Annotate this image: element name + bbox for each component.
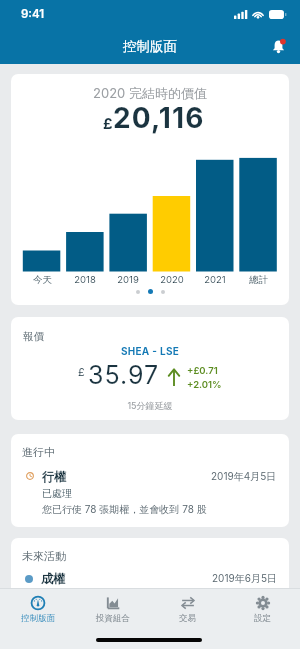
- staticText: 交易: [179, 613, 196, 624]
- button[interactable]: 2020 完結時的價值: [11, 74, 289, 305]
- button[interactable]: 控制版面: [0, 589, 75, 625]
- button[interactable]: Notifications: [265, 33, 291, 59]
- staticText: 您已行使 78 張期權，並會收到 78 股: [42, 503, 207, 516]
- button[interactable]: 報價: [11, 317, 289, 420]
- staticText: 設定: [254, 613, 271, 624]
- button[interactable]: 設定: [225, 589, 300, 625]
- staticText: 2018: [74, 274, 96, 285]
- button[interactable]: 投資組合: [75, 589, 150, 625]
- staticText: 行權: [42, 469, 66, 484]
- staticText: 未來活動: [22, 549, 66, 563]
- staticText: 已處理: [42, 487, 72, 500]
- button[interactable]: 交易: [150, 589, 225, 625]
- staticText: 進行中: [22, 445, 55, 459]
- staticText: 2021: [204, 274, 226, 285]
- staticText: 15分鐘延緩: [11, 400, 289, 411]
- staticText: 總計: [249, 274, 268, 286]
- staticText: 2019: [117, 274, 139, 285]
- staticText: 2020 完結時的價值: [11, 85, 289, 101]
- staticText: 今天: [33, 274, 52, 286]
- staticText: 2019年4月5日: [211, 470, 277, 483]
- staticText: +£0.71: [187, 365, 218, 376]
- staticText: 投資組合: [96, 613, 130, 624]
- staticText: 2020: [160, 274, 184, 285]
- staticText: 控制版面: [123, 38, 177, 55]
- staticText: 報價: [23, 330, 44, 343]
- staticText: £: [103, 114, 113, 132]
- button[interactable]: 未來活動: [11, 538, 289, 598]
- staticText: 20,116: [113, 101, 205, 135]
- staticText: 35.97: [88, 360, 160, 390]
- staticText: £: [78, 365, 85, 378]
- staticText: SHEA - LSE: [11, 345, 289, 357]
- staticText: 控制版面: [21, 613, 55, 624]
- staticText: 9:41: [21, 7, 45, 21]
- staticText: +2.01%: [187, 379, 222, 390]
- staticText: 2019年6月5日: [212, 572, 277, 585]
- staticText: 成權: [41, 571, 212, 586]
- button[interactable]: 進行中: [11, 434, 289, 527]
